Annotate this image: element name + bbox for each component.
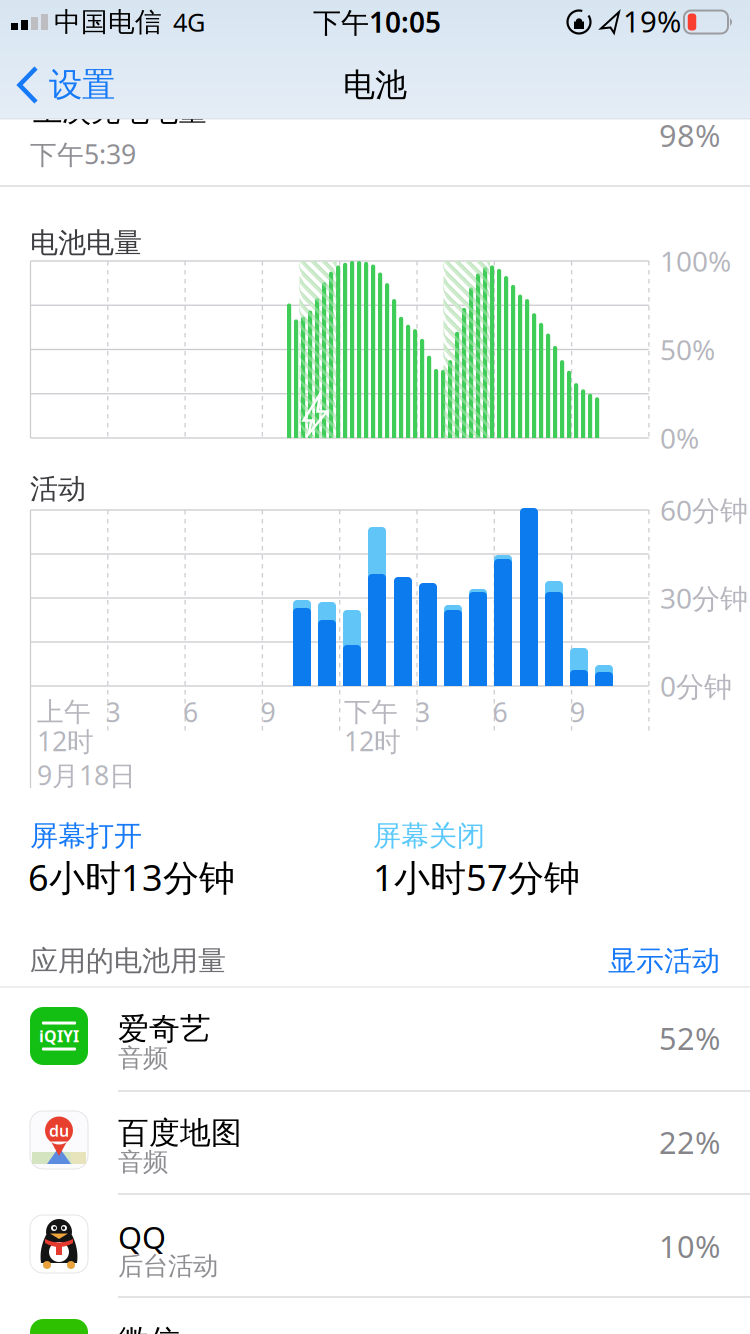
- staticText: QQ: [118, 1217, 166, 1257]
- button[interactable]: du: [0, 1091, 750, 1195]
- staticText: 22%: [659, 1122, 720, 1162]
- button[interactable]: QQ: [0, 1195, 750, 1299]
- staticText: 12时: [344, 723, 401, 759]
- staticText: 显示活动: [608, 944, 720, 978]
- staticText: 下午5:39: [30, 136, 136, 172]
- staticText: 下午10:05: [313, 3, 441, 41]
- staticText: 60分钟: [660, 491, 748, 529]
- staticText: 下午: [344, 696, 398, 728]
- button[interactable]: 设置: [0, 55, 130, 115]
- staticText: 设置: [49, 64, 115, 105]
- staticText: 3: [415, 694, 430, 730]
- staticText: 3: [105, 694, 120, 730]
- staticText: 活动: [30, 472, 86, 506]
- staticText: 30分钟: [660, 579, 748, 617]
- button[interactable]: 显示活动: [520, 944, 720, 978]
- staticText: 1小时57分钟: [373, 853, 580, 901]
- staticText: 音频: [118, 1042, 168, 1073]
- staticText: 50%: [660, 331, 715, 368]
- staticText: 4G: [173, 5, 205, 39]
- staticText: 爱奇艺: [118, 1010, 211, 1048]
- staticText: 电池: [343, 65, 407, 105]
- staticText: 9: [260, 694, 275, 730]
- staticText: 屏幕打开: [30, 819, 142, 853]
- staticText: 百度地图: [118, 1114, 242, 1152]
- staticText: 微信: [118, 1322, 180, 1334]
- button[interactable]: iQIYI: [0, 987, 750, 1091]
- staticText: 应用的电池用量: [30, 944, 226, 978]
- staticText: 19%: [623, 1, 681, 40]
- staticText: 9月18日: [37, 757, 136, 793]
- staticText: 音频: [118, 1146, 168, 1177]
- staticText: iQIYI: [39, 1025, 79, 1047]
- staticText: 0分钟: [660, 667, 732, 705]
- staticText: 上次充电电量: [33, 93, 207, 129]
- staticText: 上午: [37, 696, 91, 728]
- staticText: 100%: [660, 242, 731, 280]
- staticText: 9: [570, 694, 585, 730]
- staticText: 10%: [659, 1226, 720, 1266]
- staticText: 52%: [659, 1018, 720, 1058]
- staticText: 屏幕关闭: [373, 819, 485, 853]
- staticText: 6: [183, 694, 198, 730]
- staticText: 0%: [660, 419, 699, 457]
- staticText: 12时: [37, 723, 94, 759]
- staticText: du: [49, 1120, 69, 1141]
- staticText: 98%: [659, 115, 720, 155]
- staticText: 后台活动: [118, 1250, 218, 1281]
- staticText: 中国电信: [54, 6, 162, 38]
- staticText: 6: [492, 694, 507, 730]
- staticText: 电池电量: [30, 226, 142, 260]
- staticText: 6小时13分钟: [28, 853, 235, 901]
- button[interactable]: 微信: [0, 1299, 750, 1334]
